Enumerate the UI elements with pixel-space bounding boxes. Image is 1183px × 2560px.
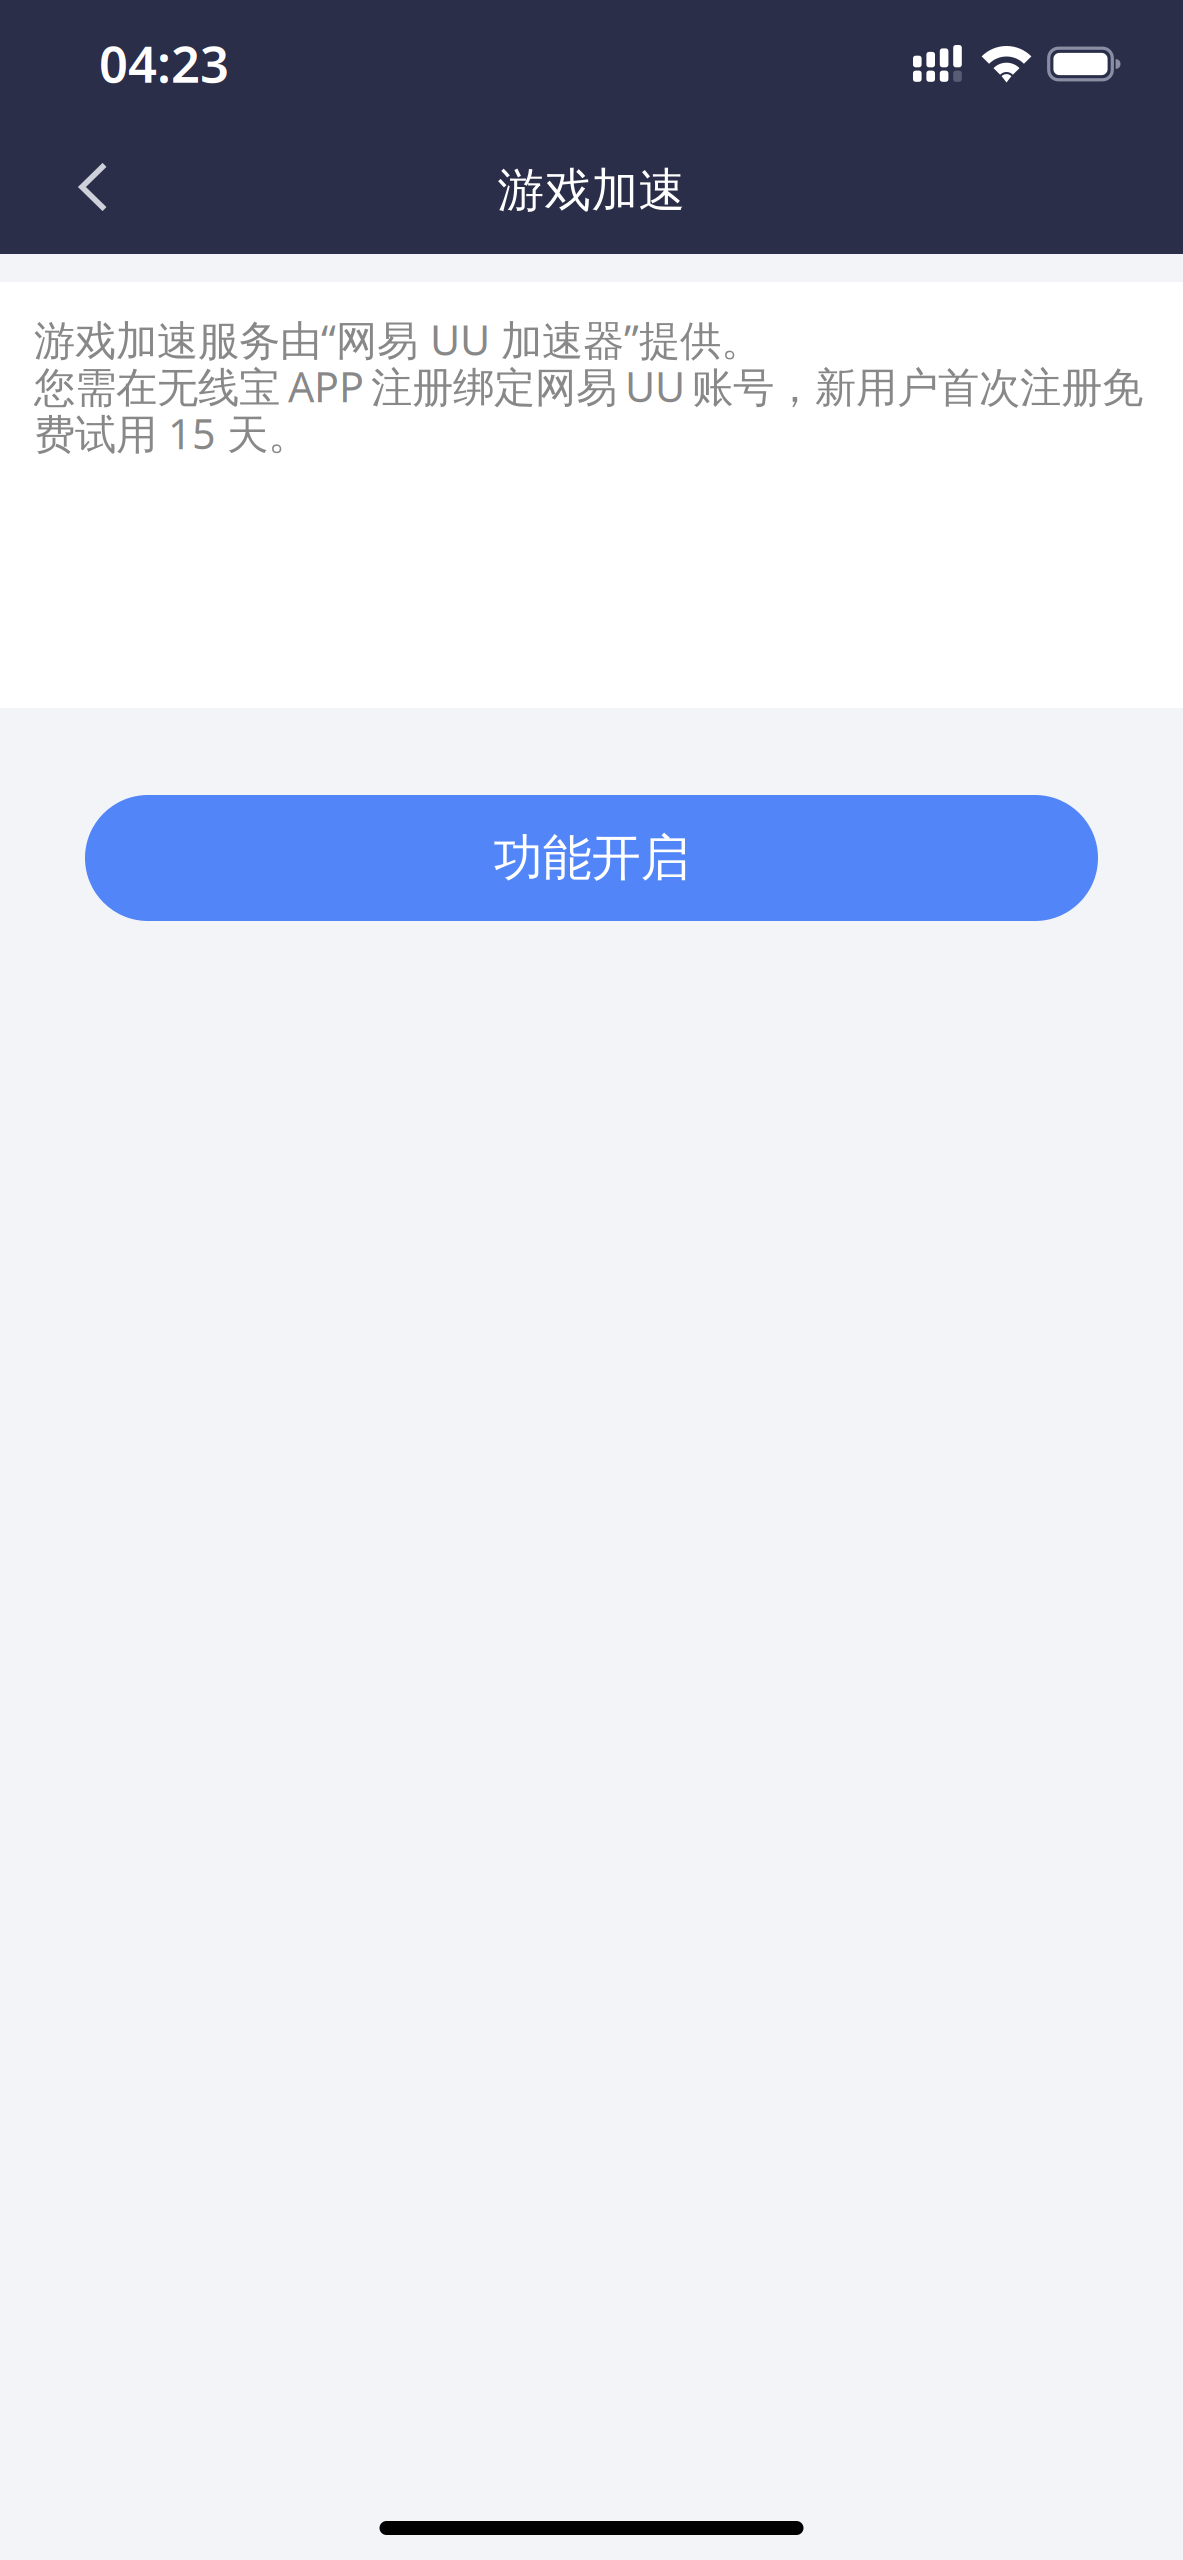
button[interactable]: 功能开启	[85, 795, 1098, 921]
staticText: 您需在无线宝 APP 注册绑定网易 UU 账号，新用户首次注册免	[34, 359, 1143, 414]
button[interactable]: 返回	[33, 127, 153, 247]
staticText: 游戏加速服务由“网易 UU 加速器”提供。	[34, 312, 762, 367]
staticText: 04:23	[99, 29, 229, 97]
staticText: 功能开启	[493, 828, 689, 888]
staticText: 游戏加速	[497, 162, 685, 219]
staticText: 费试用 15 天。	[34, 406, 309, 461]
